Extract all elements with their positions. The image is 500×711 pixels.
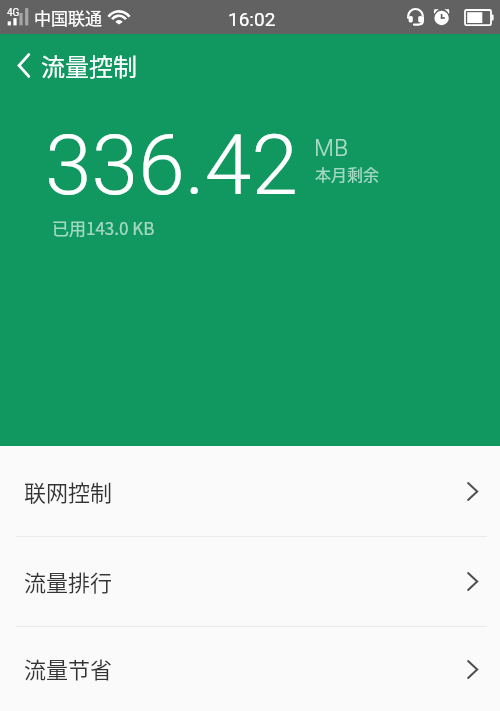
button[interactable]: 联网控制 (0, 446, 500, 536)
staticText: 中国联通 (34, 5, 102, 30)
staticText: 336.42 (45, 116, 299, 214)
staticText: 已用143.0 KB (52, 215, 155, 240)
staticText: 流量排行 (24, 565, 113, 597)
staticText: 16:02 (228, 8, 276, 30)
staticText: 流量控制 (41, 48, 137, 83)
staticText: 联网控制 (24, 475, 113, 507)
button[interactable]: 流量节省 (0, 627, 500, 711)
button[interactable]: 流量排行 (0, 537, 500, 626)
button[interactable]: Back (0, 42, 41, 92)
staticText: 本月剩余 (315, 162, 380, 185)
staticText: 4G (7, 7, 20, 19)
staticText: MB (314, 135, 348, 162)
staticText: 流量节省 (24, 652, 113, 684)
